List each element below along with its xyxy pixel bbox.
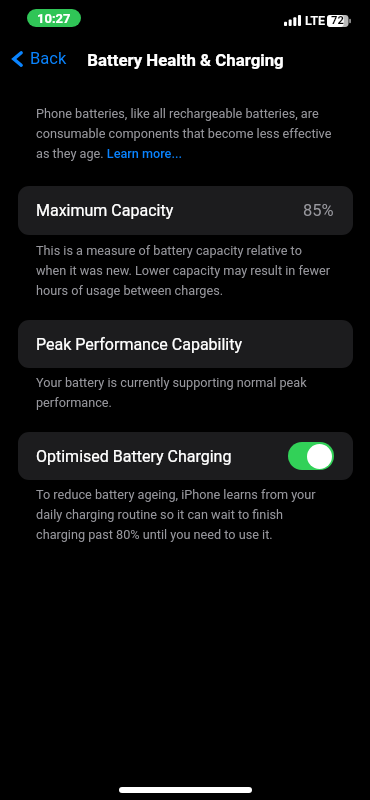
staticText: 72 xyxy=(331,14,344,27)
staticText: LTE xyxy=(305,13,326,28)
staticText: Maximum Capacity xyxy=(36,201,303,220)
staticText: 10:27 xyxy=(37,11,71,26)
staticText: To reduce battery ageing, iPhone learns … xyxy=(36,487,332,542)
staticText: Optimised Battery Charging xyxy=(36,447,288,466)
staticText: This is a measure of battery capacity re… xyxy=(36,243,332,298)
staticText: Battery Health & Charging xyxy=(87,50,284,70)
staticText: Your battery is currently supporting nor… xyxy=(36,375,332,410)
staticText: Peak Performance Capability xyxy=(36,335,334,354)
staticText: 85% xyxy=(303,201,334,220)
button[interactable]: Maximum Capacity xyxy=(18,186,353,235)
button[interactable]: Back xyxy=(0,45,77,76)
staticText: Phone batteries, like all rechargeable b… xyxy=(36,106,332,161)
staticText: Back xyxy=(30,49,67,68)
button[interactable]: Optimised Battery Charging, on xyxy=(288,442,334,470)
button[interactable]: Peak Performance Capability xyxy=(18,320,353,368)
button[interactable]: Optimised Battery Charging xyxy=(18,432,353,480)
